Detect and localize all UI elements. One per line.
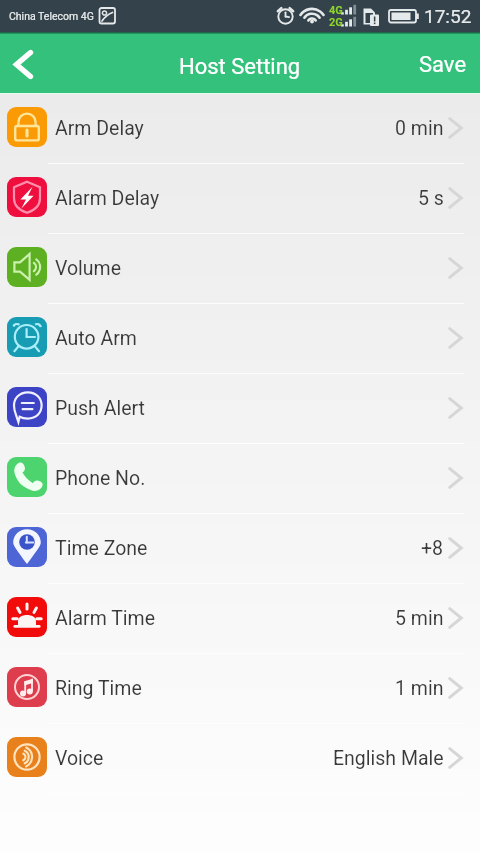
staticText: English Male — [333, 747, 444, 770]
staticText: Save — [419, 52, 467, 78]
staticText: Alarm Time — [55, 607, 156, 630]
staticText: 4G — [329, 4, 343, 17]
staticText: Alarm Delay — [55, 187, 160, 210]
button[interactable]: Save — [405, 34, 480, 92]
staticText: Ring Time — [55, 677, 142, 700]
staticText: Auto Arm — [55, 327, 137, 350]
staticText: Voice — [55, 747, 104, 770]
staticText: +8 — [421, 537, 444, 560]
staticText: 1 min — [395, 677, 444, 700]
button[interactable]: Arm Delay — [0, 94, 480, 164]
button[interactable]: Auto Arm — [0, 304, 480, 374]
button[interactable]: Time Zone — [0, 514, 480, 584]
staticText: China Telecom 4G — [9, 10, 94, 22]
button[interactable]: Alarm Delay — [0, 164, 480, 234]
staticText: Arm Delay — [55, 117, 144, 140]
staticText: 5 min — [395, 607, 444, 630]
staticText: Volume — [55, 257, 122, 280]
button[interactable]: Push Alert — [0, 374, 480, 444]
staticText: 17:52 — [424, 5, 472, 27]
button[interactable]: Voice — [0, 724, 480, 794]
staticText: 2G — [329, 16, 343, 29]
staticText: Push Alert — [55, 397, 145, 420]
staticText: Phone No. — [55, 467, 146, 490]
button[interactable]: Volume — [0, 234, 480, 304]
staticText: Time Zone — [55, 537, 148, 560]
staticText: 5 s — [418, 187, 444, 210]
button[interactable]: Back — [0, 32, 48, 94]
button[interactable]: Alarm Time — [0, 584, 480, 654]
button[interactable]: Ring Time — [0, 654, 480, 724]
staticText: 0 min — [395, 117, 444, 140]
staticText: Host Setting — [179, 54, 301, 80]
button[interactable]: Phone No. — [0, 444, 480, 514]
